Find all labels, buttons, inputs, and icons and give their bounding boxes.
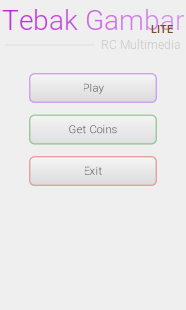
staticText: G [85,4,104,37]
staticText: T [2,4,19,37]
button[interactable]: Play [29,73,157,103]
staticText: RC Multimedia [101,38,180,52]
staticText: b [144,4,160,37]
staticText: k [64,4,78,37]
staticText: r [175,4,184,37]
button[interactable]: Get Coins [29,114,157,144]
staticText: e [19,4,33,37]
staticText: Play [82,81,103,95]
staticText: a [49,4,64,37]
staticText: a [104,4,119,37]
button[interactable]: Exit [29,156,157,186]
staticText: a [160,4,175,37]
staticText: m [119,4,144,37]
staticText: Get Coins [68,123,117,136]
staticText: LITE [151,23,173,35]
staticText: Exit [83,164,102,178]
staticText: b [33,4,49,37]
